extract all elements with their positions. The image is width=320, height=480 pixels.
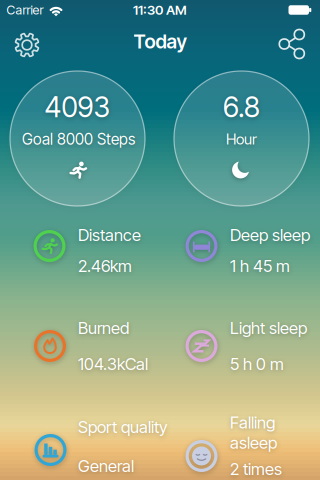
staticText: General bbox=[78, 456, 134, 476]
staticText: 2 times bbox=[230, 459, 282, 479]
staticText: Hour bbox=[226, 130, 257, 148]
staticText: Burned bbox=[78, 318, 129, 338]
staticText: Today bbox=[133, 30, 186, 53]
button[interactable]: Steps bbox=[10, 71, 145, 206]
staticText: Sport quality bbox=[78, 417, 167, 437]
staticText: 5 h 0 m bbox=[230, 354, 284, 374]
staticText: 2.46km bbox=[78, 256, 132, 276]
staticText: 11:30 AM bbox=[133, 2, 187, 18]
staticText: Carrier bbox=[6, 2, 43, 18]
button[interactable]: Sleep bbox=[174, 71, 309, 206]
staticText: Goal 8000 Steps bbox=[22, 130, 135, 148]
staticText: 104.3kCal bbox=[78, 354, 148, 374]
staticText: Light sleep bbox=[230, 318, 307, 338]
staticText: 6.8 bbox=[223, 90, 260, 124]
staticText: Distance bbox=[78, 225, 141, 245]
staticText: 1 h 45 m bbox=[230, 256, 290, 276]
button[interactable]: Settings bbox=[7, 25, 47, 65]
staticText: Falling asleep bbox=[230, 412, 277, 453]
staticText: 4093 bbox=[44, 90, 110, 124]
staticText: Deep sleep bbox=[230, 225, 310, 245]
button[interactable]: Share bbox=[272, 24, 312, 64]
